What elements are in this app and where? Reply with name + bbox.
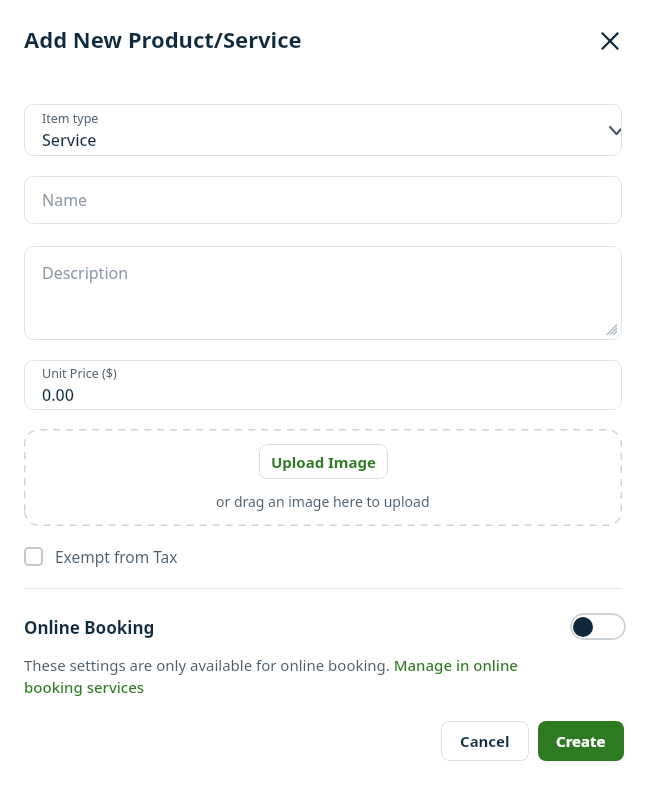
staticText: Online Booking bbox=[24, 616, 155, 639]
staticText: Upload Image bbox=[271, 452, 376, 472]
staticText: Description bbox=[42, 262, 129, 284]
staticText: Create bbox=[556, 731, 606, 751]
button[interactable]: Close bbox=[590, 21, 630, 61]
button[interactable]: Unit Price ($) bbox=[24, 360, 622, 410]
staticText: Exempt from Tax bbox=[55, 546, 178, 567]
button[interactable]: Toggle online booking bbox=[570, 613, 626, 640]
button[interactable]: Description bbox=[24, 246, 622, 340]
button[interactable]: Upload Image bbox=[259, 444, 388, 479]
button[interactable]: Exempt from Tax bbox=[24, 544, 178, 568]
staticText: Name bbox=[42, 189, 88, 211]
staticText: These settings are only available for on… bbox=[24, 655, 540, 698]
button[interactable]: Cancel bbox=[441, 721, 529, 761]
staticText: Unit Price ($) bbox=[42, 365, 117, 382]
button[interactable]: Item type bbox=[24, 104, 622, 156]
staticText: Service bbox=[42, 129, 97, 151]
button[interactable]: Create bbox=[538, 721, 624, 761]
staticText: Cancel bbox=[460, 731, 510, 751]
staticText: Item type bbox=[42, 110, 99, 127]
staticText: 0.00 bbox=[42, 384, 74, 406]
staticText: Add New Product/Service bbox=[24, 24, 302, 54]
staticText: or drag an image here to upload bbox=[216, 492, 430, 511]
button[interactable]: Name bbox=[24, 176, 622, 224]
